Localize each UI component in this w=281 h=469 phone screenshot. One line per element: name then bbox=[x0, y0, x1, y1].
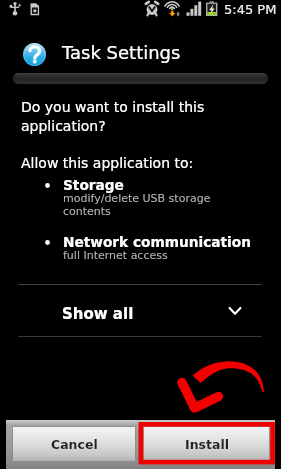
button[interactable]: Show all bbox=[0, 285, 281, 336]
staticText: Cancel bbox=[51, 437, 98, 452]
staticText: full Internet access bbox=[63, 249, 168, 262]
button[interactable]: Install bbox=[144, 427, 269, 461]
staticText: Network communication bbox=[63, 234, 251, 250]
staticText: Install bbox=[185, 437, 229, 452]
staticText: Allow this application to: bbox=[21, 155, 194, 171]
staticText: Task Settings bbox=[62, 42, 181, 63]
staticText: 5:45 PM bbox=[224, 2, 277, 17]
staticText: Do you want to install this application? bbox=[21, 99, 205, 135]
staticText: Show all bbox=[62, 305, 134, 322]
button[interactable]: Cancel bbox=[13, 427, 135, 461]
staticText: modify/delete USB storage contents bbox=[63, 192, 211, 218]
staticText: Storage bbox=[63, 177, 124, 193]
